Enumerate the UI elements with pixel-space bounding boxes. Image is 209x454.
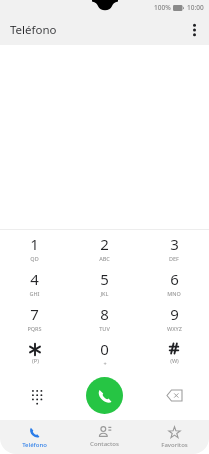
button[interactable]: Backspace: [161, 382, 187, 408]
button[interactable]: Contactos: [69, 420, 139, 454]
staticText: Teléfono: [22, 441, 47, 449]
staticText: 6: [170, 269, 179, 289]
button[interactable]: 2: [69, 230, 139, 265]
staticText: 2: [100, 234, 109, 254]
staticText: Contactos: [90, 440, 119, 448]
staticText: (W): [170, 357, 179, 364]
staticText: 100%: [154, 3, 171, 12]
button[interactable]: More options: [179, 15, 209, 45]
button[interactable]: 4: [0, 265, 69, 300]
button[interactable]: Hide keypad: [24, 382, 50, 408]
button[interactable]: 1: [0, 230, 69, 265]
staticText: 4: [30, 269, 39, 289]
staticText: JKL: [100, 290, 109, 297]
staticText: 0: [100, 339, 109, 359]
staticText: TUV: [99, 325, 110, 332]
staticText: PQRS: [27, 325, 42, 332]
staticText: 3: [170, 234, 179, 254]
staticText: 7: [30, 304, 39, 324]
staticText: 8: [100, 304, 109, 324]
staticText: QD: [30, 255, 39, 262]
staticText: DEF: [169, 255, 179, 262]
staticText: ABC: [99, 255, 110, 262]
staticText: Teléfono: [10, 22, 57, 38]
button[interactable]: Call: [86, 377, 123, 414]
staticText: 1: [30, 234, 39, 254]
button[interactable]: (P): [0, 335, 69, 370]
button[interactable]: 8: [69, 300, 139, 335]
staticText: GHI: [29, 290, 40, 297]
button[interactable]: 5: [69, 265, 139, 300]
staticText: Favoritos: [161, 441, 188, 449]
button[interactable]: 6: [139, 265, 209, 300]
staticText: MNO: [167, 290, 181, 297]
button[interactable]: 7: [0, 300, 69, 335]
button[interactable]: Favoritos: [139, 420, 209, 454]
staticText: WXYZ: [167, 325, 182, 332]
button[interactable]: 3: [139, 230, 209, 265]
staticText: 9: [170, 304, 179, 324]
button[interactable]: (W): [139, 335, 209, 370]
staticText: 5: [100, 269, 109, 289]
staticText: 10:00: [187, 3, 204, 12]
button[interactable]: Teléfono: [0, 420, 69, 454]
button[interactable]: 0: [69, 335, 139, 370]
staticText: (P): [32, 357, 39, 364]
button[interactable]: 9: [139, 300, 209, 335]
staticText: +: [103, 360, 107, 367]
